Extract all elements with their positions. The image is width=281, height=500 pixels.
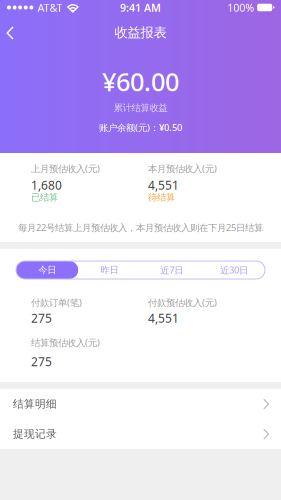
- staticText: 结算预估收入(元): [31, 336, 100, 349]
- button[interactable]: 近7日: [140, 261, 203, 279]
- staticText: 累计结算收益: [113, 102, 167, 114]
- staticText: 已结算: [31, 192, 58, 203]
- staticText: AT&T: [37, 0, 62, 15]
- staticText: 提现记录: [13, 427, 57, 440]
- button[interactable]: 昨日: [78, 261, 140, 279]
- staticText: 上月预估收入(元): [31, 162, 100, 175]
- staticText: 近30日: [220, 264, 248, 276]
- staticText: 今日: [38, 264, 56, 276]
- staticText: 近7日: [160, 264, 183, 276]
- button[interactable]: 结算明细: [0, 389, 281, 419]
- button[interactable]: 近30日: [203, 261, 265, 279]
- staticText: 4,551: [148, 177, 179, 193]
- staticText: 275: [31, 353, 52, 369]
- staticText: 每月22号结算上月预估收入，本月预估收入则在下月25日结算: [18, 221, 263, 234]
- staticText: 账户余额(元)：¥0.50: [99, 121, 182, 134]
- staticText: 100%: [227, 0, 254, 15]
- staticText: 结算明细: [13, 397, 57, 410]
- staticText: 9:41 AM: [120, 0, 161, 15]
- button[interactable]: 今日: [16, 261, 78, 279]
- staticText: 待结算: [148, 192, 175, 203]
- staticText: 本月预估收入(元): [148, 162, 217, 175]
- staticText: 付款订单(笔): [31, 296, 82, 309]
- staticText: ¥60.00: [102, 65, 179, 98]
- staticText: 付款预估收入(元): [148, 296, 217, 309]
- button[interactable]: Back: [1, 20, 33, 46]
- staticText: 1,680: [31, 177, 62, 193]
- staticText: 4,551: [148, 310, 179, 326]
- staticText: 275: [31, 310, 52, 326]
- button[interactable]: 提现记录: [0, 419, 281, 449]
- staticText: 收益报表: [114, 24, 166, 41]
- staticText: 昨日: [100, 264, 118, 276]
